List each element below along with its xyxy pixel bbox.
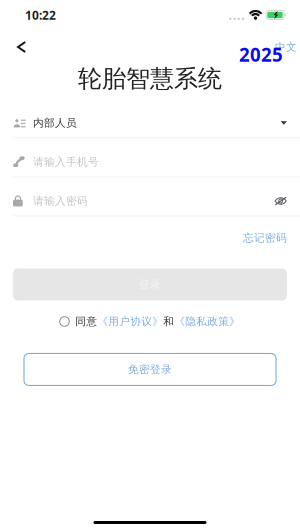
button[interactable]: Back [0,36,46,58]
button[interactable]: Show password [267,192,287,210]
staticText: 和 [163,315,174,328]
staticText: 请输入密码 [33,194,88,207]
staticText: 同意 [75,315,97,328]
staticText: 忘记密码 [243,231,287,244]
staticText: 10:22 [25,7,56,23]
staticText: 请输入手机号 [33,155,99,168]
staticText: 免密登录 [128,363,172,376]
button[interactable]: 同意 [60,314,240,328]
button[interactable]: 免密登录 [24,353,276,385]
staticText: 登录 [139,278,161,291]
staticText: 2025 [239,42,283,67]
staticText: 《隐私政策》 [174,315,240,328]
button[interactable]: 中文 [275,36,300,58]
staticText: 轮胎智慧系统 [78,64,222,93]
staticText: 《用户协议》 [97,315,163,328]
staticText: 内部人员 [33,116,77,129]
button[interactable]: 忘记密码 [243,230,287,245]
staticText: 中文 [275,40,297,53]
